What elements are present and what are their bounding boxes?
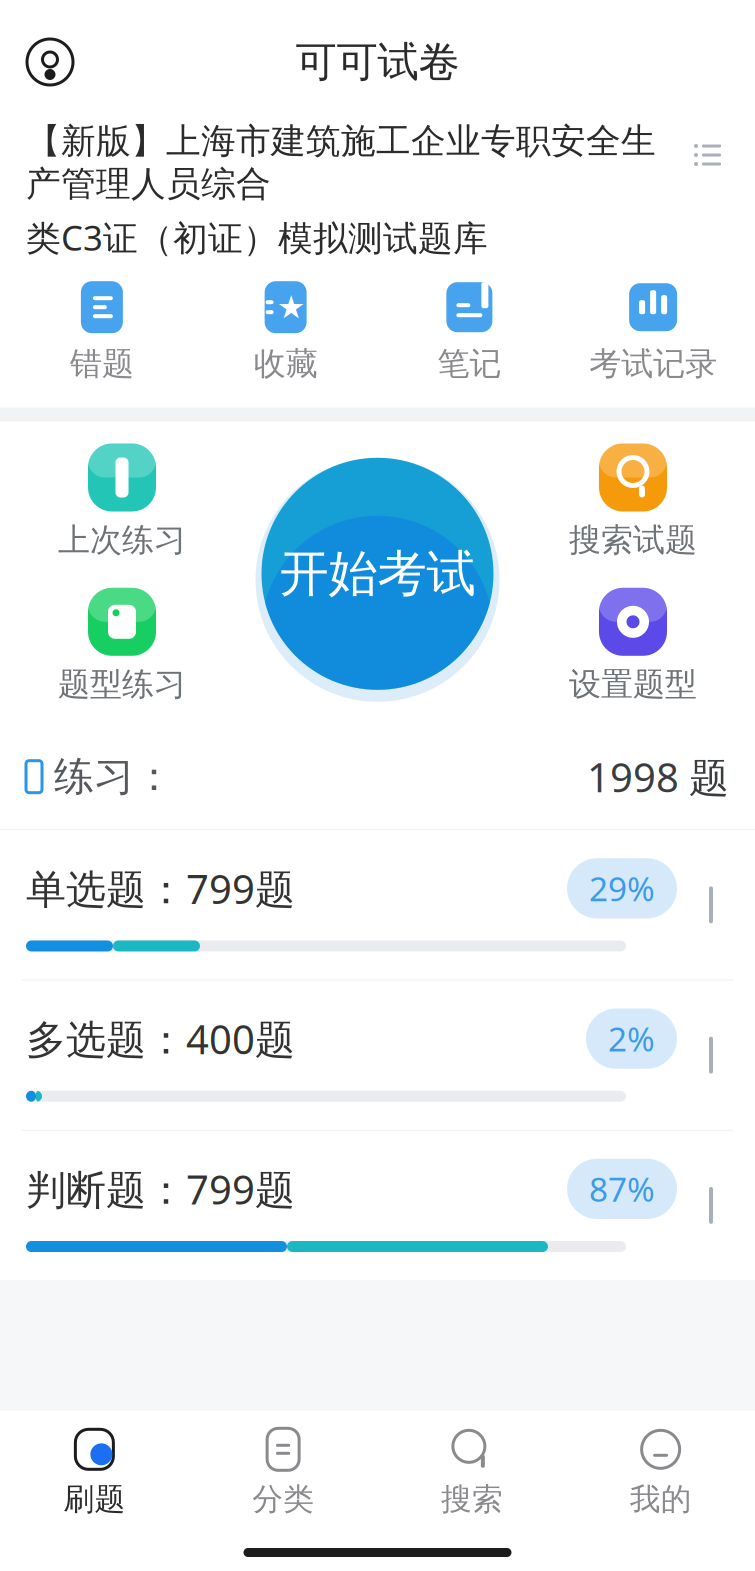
staticText: 87% [589,1167,655,1211]
button[interactable]: 单选题：799题 [0,830,755,979]
button[interactable]: 查看详情 [677,883,729,927]
button[interactable]: 多选题：400题 [0,980,755,1130]
button[interactable]: 题型练习 [58,584,186,708]
staticText: 笔记 [437,344,501,383]
staticText: 【新版】上海市建筑施工企业专职安全生产管理人员综合 [26,120,656,205]
staticText: ★ [277,289,306,325]
staticText: 1998 题 [587,750,729,803]
button[interactable]: 搜索试题 [569,439,697,564]
staticText: 搜索 [441,1480,503,1518]
staticText: 29% [589,866,655,910]
staticText: 错题 [70,344,134,383]
staticText: 类C3证（初证）模拟测试题库 [26,214,488,260]
staticText: 多选题：400题 [26,1012,295,1065]
staticText: 可可试卷 [295,37,459,87]
button[interactable]: ★ [194,274,378,389]
button[interactable]: 分类 [189,1422,378,1522]
staticText: 题型练习 [58,665,186,704]
button[interactable]: 错题 [10,274,194,389]
button[interactable]: 题库列表 [686,120,729,176]
staticText: 考试记录 [589,344,717,383]
staticText: 开始考试 [279,543,475,604]
staticText: 设置题型 [569,665,697,704]
button[interactable]: 个人中心 [0,27,100,97]
button[interactable]: 我的 [566,1422,755,1522]
staticText: 搜索试题 [569,520,697,560]
staticText: 单选题：799题 [26,862,295,915]
button[interactable]: 刷题 [0,1422,189,1522]
staticText: 2% [608,1016,655,1061]
button[interactable]: 判断题：799题 [0,1131,755,1280]
staticText: 收藏 [254,344,318,383]
staticText: 分类 [252,1480,314,1518]
staticText: 我的 [630,1480,692,1518]
button[interactable]: 查看详情 [677,1033,729,1077]
staticText: 刷题 [63,1480,125,1518]
staticText: 上次练习 [58,520,186,560]
staticText: 练习： [54,752,174,801]
button[interactable]: 考试记录 [561,274,745,389]
button[interactable]: 开始考试 [252,448,502,700]
button[interactable]: 搜索 [377,1422,566,1522]
button[interactable]: 笔记 [377,274,561,389]
staticText: 判断题：799题 [26,1162,295,1215]
button[interactable]: 查看详情 [677,1183,729,1227]
button[interactable]: 上次练习 [58,439,186,564]
button[interactable]: 设置题型 [569,584,697,708]
